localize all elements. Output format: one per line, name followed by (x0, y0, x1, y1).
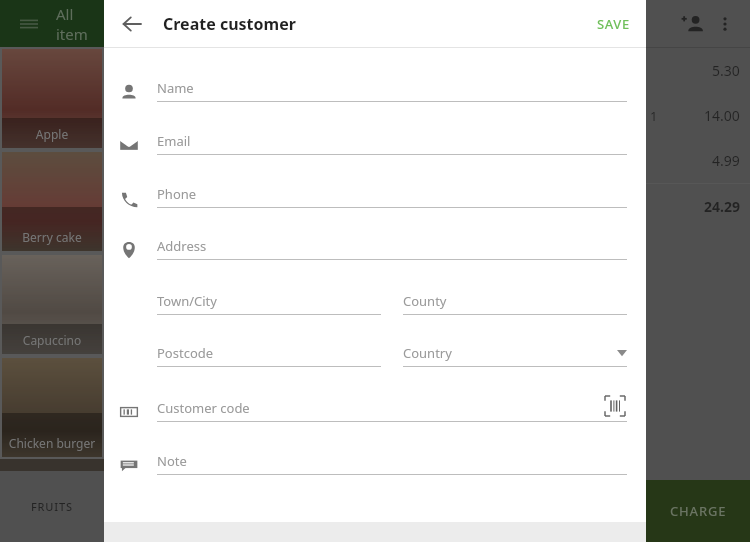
button[interactable]: Scan code (605, 396, 625, 416)
staticText: Customer code (157, 399, 250, 417)
staticText: Postcode (157, 344, 214, 362)
button[interactable]: Back (117, 9, 147, 39)
staticText: Note (157, 452, 187, 470)
staticText: Apple (2, 126, 102, 142)
button[interactable]: 24.29 (646, 184, 750, 228)
staticText: 1 (650, 107, 658, 125)
staticText: All item (56, 4, 104, 44)
staticText: Berry cake (2, 229, 102, 245)
button[interactable]: 4.99 (646, 138, 750, 183)
staticText: CHARGE (670, 502, 727, 520)
staticText: 4.99 (712, 151, 740, 170)
button[interactable]: Name (104, 76, 646, 120)
button[interactable]: Berry cake (2, 152, 102, 251)
button[interactable]: 1 (646, 93, 750, 138)
button[interactable]: SAVE (581, 0, 646, 47)
button[interactable]: Capuccino (2, 255, 102, 354)
button[interactable]: 5.30 (646, 48, 750, 93)
staticText: Create customer (163, 13, 296, 35)
staticText: FRUITS (31, 499, 73, 514)
button[interactable]: CHARGE (646, 480, 750, 542)
button[interactable]: Add customer (680, 11, 706, 37)
staticText: County (403, 292, 447, 310)
button[interactable]: Apple (2, 49, 102, 148)
staticText: Town/City (157, 292, 217, 310)
button[interactable]: County (403, 289, 627, 325)
staticText: 5.30 (712, 61, 740, 80)
staticText: SAVE (597, 15, 630, 33)
button[interactable]: Town/City (157, 289, 381, 325)
staticText: 14.00 (704, 106, 740, 125)
button[interactable]: More options (712, 11, 738, 37)
button[interactable]: Address (104, 234, 646, 278)
button[interactable]: Phone (104, 182, 646, 226)
staticText: Capuccino (2, 332, 102, 348)
staticText: Chicken burger (2, 435, 102, 451)
button[interactable]: Note (104, 449, 646, 493)
staticText: Address (157, 237, 207, 255)
staticText: Name (157, 79, 194, 97)
button[interactable]: Postcode (157, 341, 381, 377)
button[interactable]: Customer code (104, 396, 646, 440)
staticText: Email (157, 132, 191, 150)
staticText: Country (403, 344, 452, 362)
staticText: Phone (157, 185, 197, 203)
button[interactable]: Country (403, 341, 627, 377)
staticText: 24.29 (704, 197, 740, 216)
button[interactable]: Chicken burger (2, 358, 102, 457)
button[interactable]: Email (104, 129, 646, 173)
